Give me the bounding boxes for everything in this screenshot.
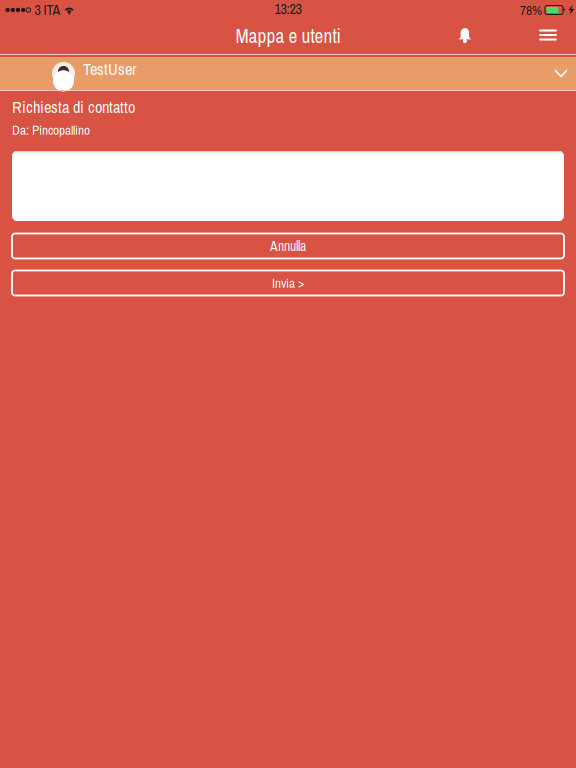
staticText: Annulla	[270, 237, 306, 255]
button[interactable]: Annulla	[12, 233, 564, 258]
button[interactable]: Menu	[528, 20, 568, 52]
staticText: Mappa e utenti	[235, 23, 340, 49]
staticText: 13:23	[274, 0, 301, 18]
button[interactable]: Invia >	[12, 270, 564, 295]
staticText: Invia >	[272, 274, 304, 292]
staticText: TestUser	[83, 58, 136, 80]
button[interactable]: Notifiche	[442, 20, 488, 52]
button[interactable]: TestUser	[0, 57, 576, 90]
staticText: Richiesta di contatto	[12, 96, 135, 118]
staticText: Da: Pincopallino	[12, 121, 90, 139]
staticText: 3 ITA	[35, 1, 61, 19]
staticText: 78%	[520, 1, 542, 19]
